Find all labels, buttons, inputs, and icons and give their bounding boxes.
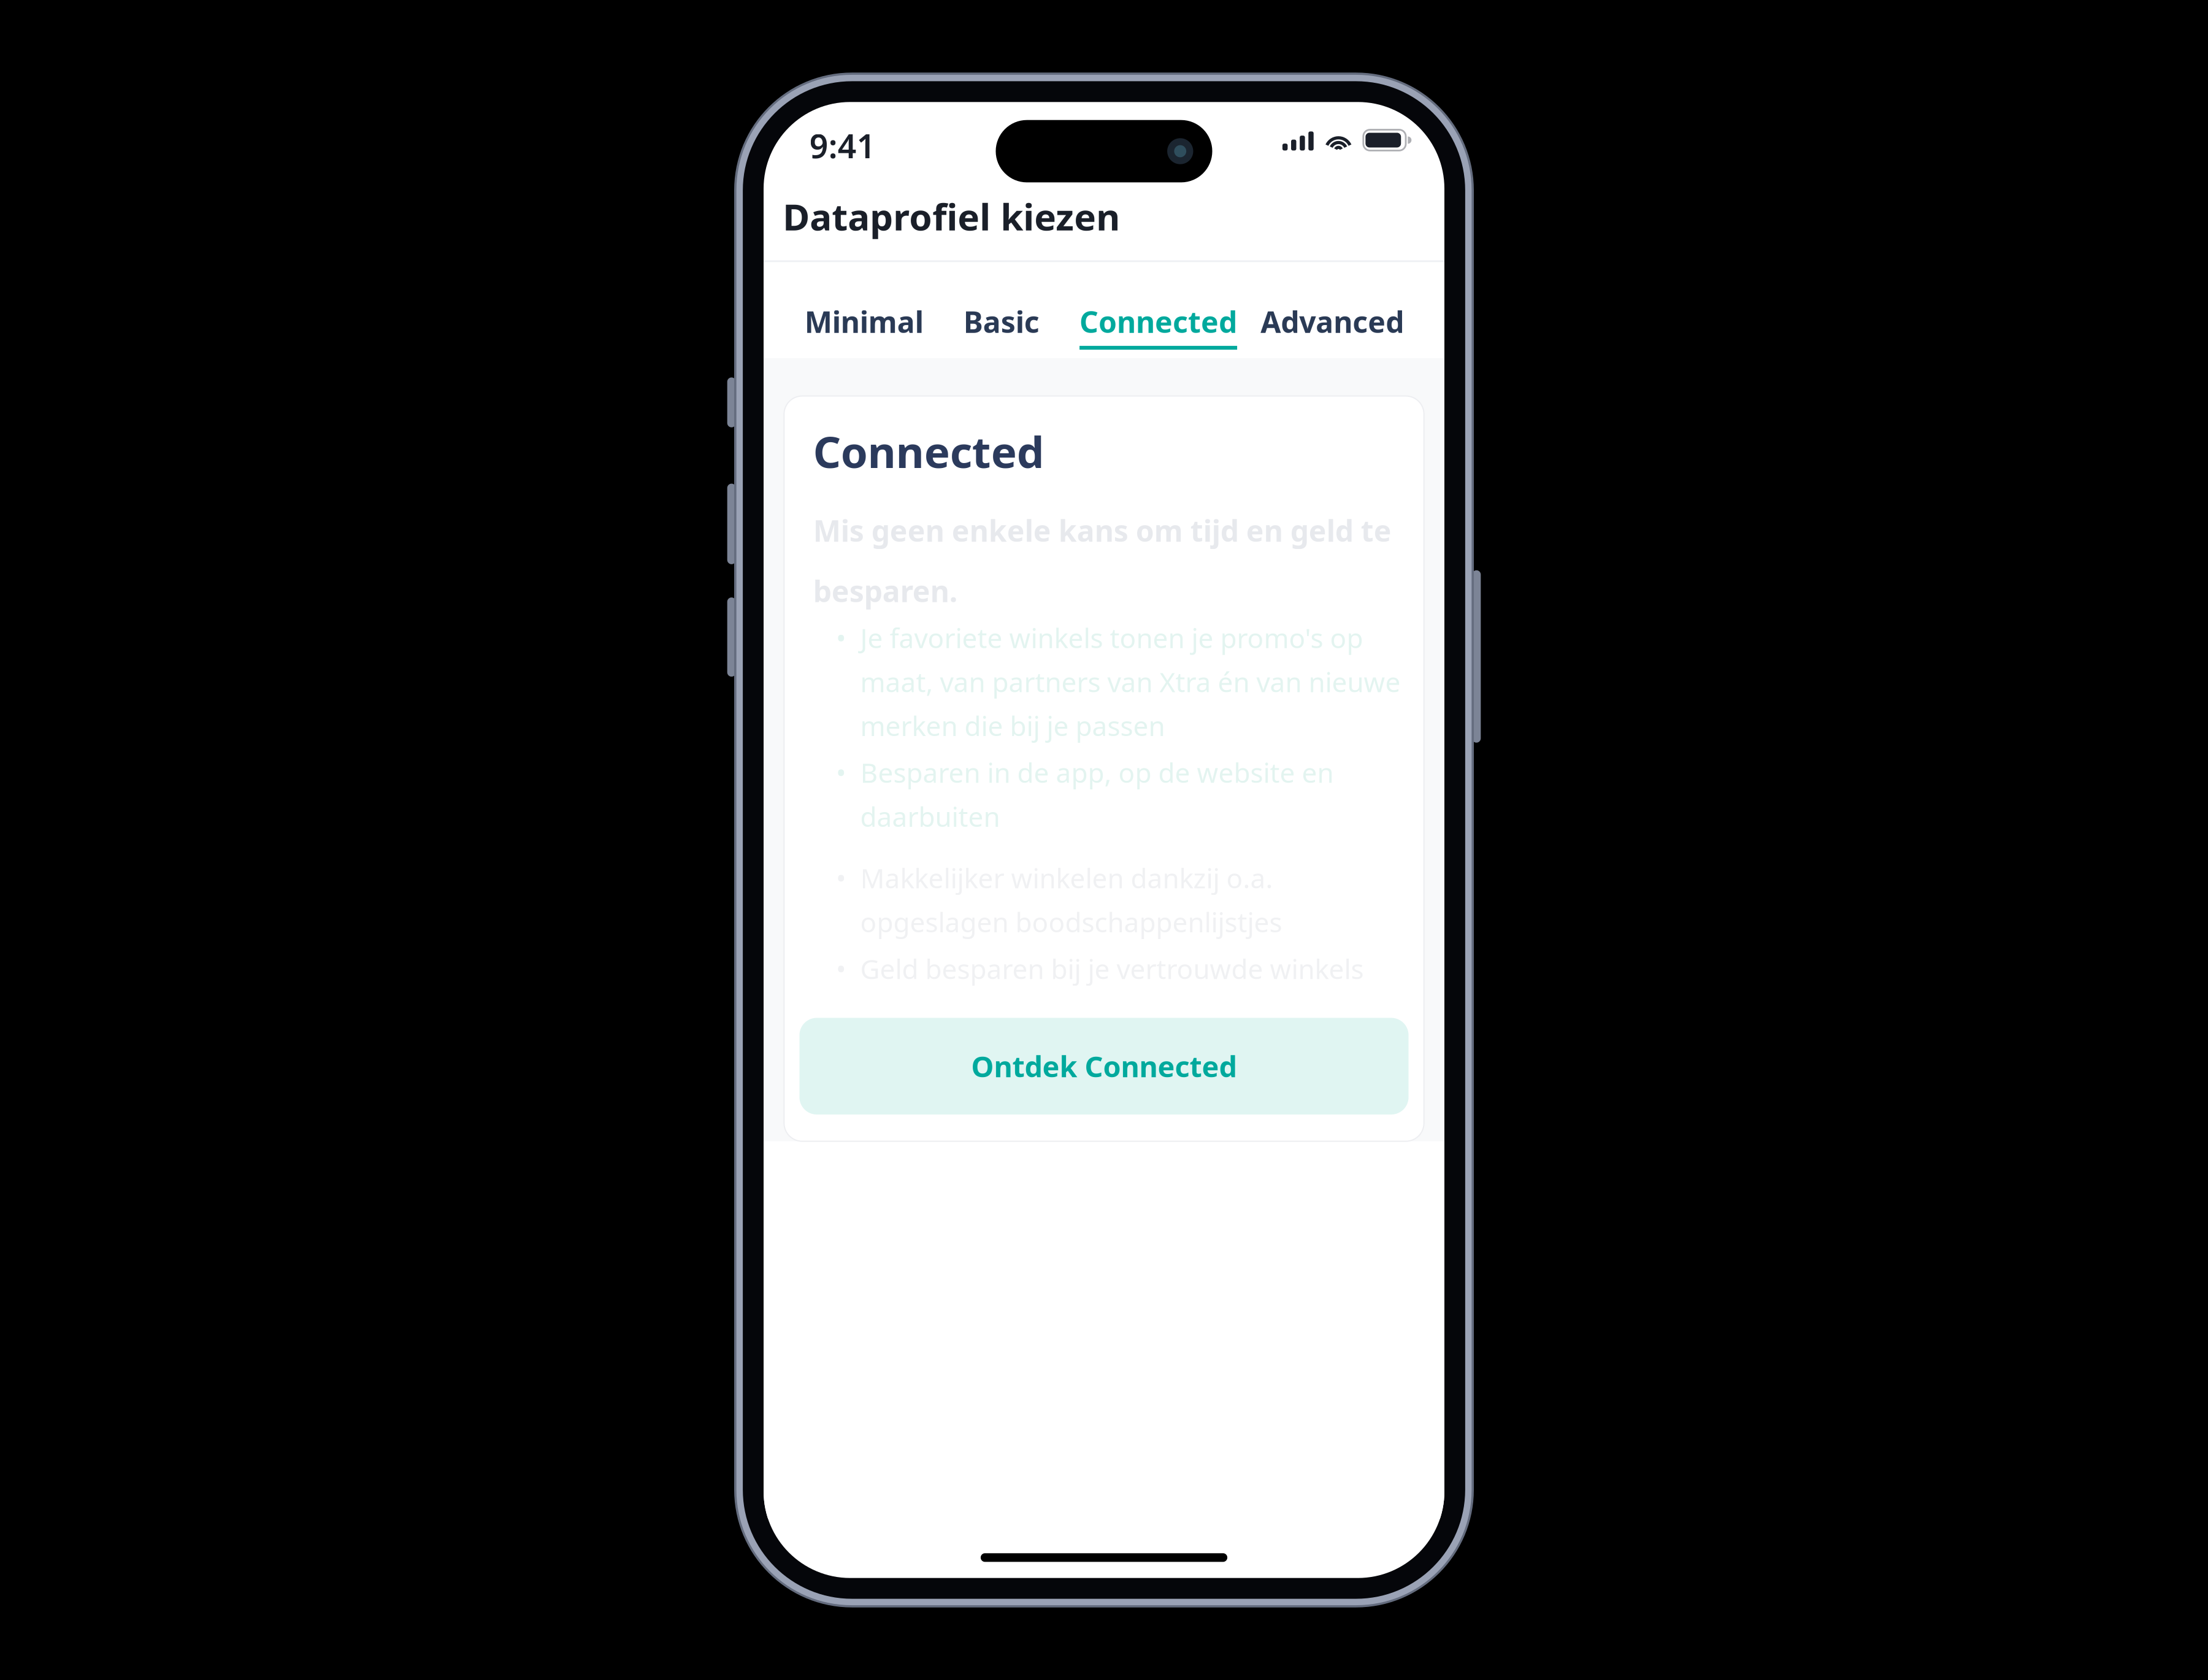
staticText: Advanced [1261,302,1404,341]
staticText: • [836,951,846,986]
staticText: Basic [963,302,1040,341]
staticText: Je favoriete winkels tonen je promo's op… [860,620,1401,744]
staticText: • [836,620,846,656]
staticText: Besparen in de app, op de website en daa… [860,754,1334,834]
staticText: 9:41 [810,124,876,167]
staticText: • [836,860,846,896]
staticText: Mis geen enkele kans om tijd en geld te … [813,511,1392,610]
button[interactable]: Basic [947,302,1056,350]
staticText: Makkelijker winkelen dankzij o.a. opgesl… [860,860,1282,940]
staticText: Ontdek Connected [971,1047,1237,1085]
staticText: Connected [813,422,1044,480]
staticText: Geld besparen bij je vertrouwde winkels [860,951,1364,986]
button[interactable]: Advanced [1261,302,1404,350]
staticText: Minimal [805,302,923,341]
button[interactable]: Minimal [805,302,923,350]
button[interactable]: Connected [1080,302,1237,350]
staticText: Dataprofiel kiezen [783,192,1120,241]
staticText: Connected [1080,302,1237,341]
button[interactable]: Ontdek Connected [799,1018,1409,1115]
staticText: • [836,754,846,790]
